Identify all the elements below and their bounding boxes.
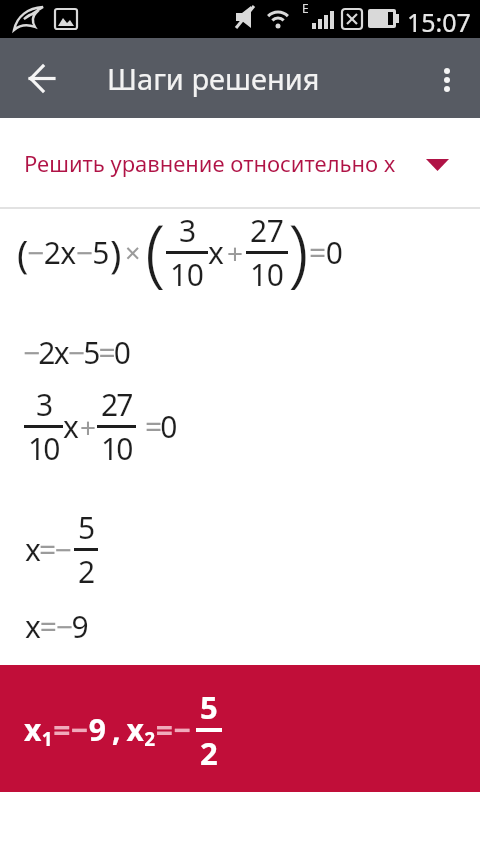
staticText: 10 [170, 254, 204, 295]
staticText: x [208, 232, 224, 273]
staticText: x1=−9 , x2=− [24, 709, 192, 752]
staticText: x=− [25, 529, 70, 570]
staticText: ( [17, 227, 27, 279]
button[interactable] [0, 38, 72, 118]
staticText: Шаги решения [107, 59, 320, 98]
staticText: ) [288, 199, 309, 300]
staticText: 2 [200, 732, 218, 774]
staticText: 10 [250, 254, 284, 295]
staticText: 27 [250, 210, 284, 251]
staticText: 27 [101, 384, 132, 425]
staticText: × [125, 234, 140, 271]
staticText: =0 [309, 232, 343, 273]
staticText: ( [145, 199, 166, 300]
staticText: ) [110, 227, 120, 279]
staticText: 2 [78, 551, 94, 592]
staticText: 10 [28, 428, 59, 469]
staticText: 5 [200, 686, 218, 728]
staticText: 3 [36, 384, 52, 425]
staticText: + [80, 408, 95, 446]
staticText: Решить уравнение относительно x [24, 148, 396, 178]
staticText: 10 [101, 428, 132, 469]
button[interactable]: Решить уравнение относительно x [0, 118, 480, 207]
staticText: 3 [179, 210, 196, 251]
staticText: E [302, 0, 309, 16]
staticText: 15:07 [407, 5, 471, 39]
button[interactable] [432, 38, 480, 118]
staticText: x [63, 406, 78, 447]
staticText: + [227, 234, 243, 272]
button[interactable]: x1=−9 , x2=− [0, 665, 480, 792]
staticText: =0 [145, 406, 176, 447]
staticText: x=−9 [25, 606, 88, 647]
staticText: −2x−5 [27, 232, 110, 273]
staticText: −2x−5=0 [23, 332, 130, 373]
staticText: 5 [78, 507, 94, 548]
